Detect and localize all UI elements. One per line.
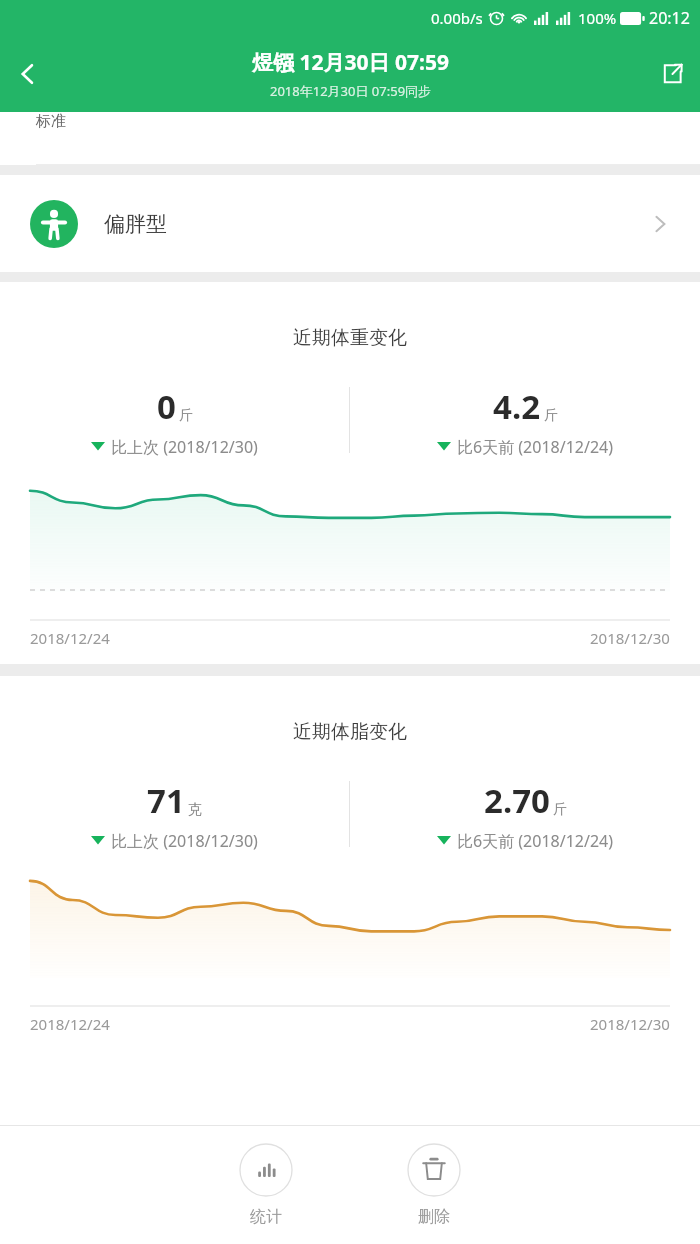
staticText: 2018年12月30日 07:59同步 — [270, 82, 432, 100]
staticText: 比6天前 (2018/12/24) — [457, 436, 614, 456]
staticText: 20:12 — [649, 7, 690, 29]
staticText: 2.70 — [484, 778, 550, 823]
staticText: 标准 — [36, 112, 66, 131]
button[interactable]: Statistics — [227, 1139, 305, 1231]
staticText: 煜镪 12月30日 07:59 — [252, 48, 449, 77]
other: Statistics — [239, 1143, 293, 1197]
staticText: 统计 — [250, 1207, 282, 1227]
staticText: 0.00b/s — [431, 8, 483, 28]
staticText: 斤 — [553, 801, 567, 819]
staticText: 近期体脂变化 — [0, 720, 700, 744]
staticText: 斤 — [179, 407, 193, 425]
staticText: 2018/12/24 — [30, 1014, 110, 1034]
staticText: 100% — [578, 8, 617, 28]
button[interactable]: 偏胖型 — [0, 175, 700, 272]
staticText: 2018/12/24 — [30, 628, 110, 648]
staticText: 删除 — [418, 1207, 450, 1227]
staticText: 比上次 (2018/12/30) — [111, 436, 258, 456]
button[interactable]: Delete — [395, 1139, 473, 1231]
staticText: 0 — [157, 384, 176, 429]
staticText: 2018/12/30 — [590, 628, 670, 648]
other: Delete — [407, 1143, 461, 1197]
staticText: 斤 — [544, 407, 558, 425]
staticText: 71 — [147, 778, 185, 823]
button[interactable]: Share — [644, 46, 700, 102]
staticText: 克 — [188, 801, 202, 819]
button[interactable]: Back — [0, 46, 56, 102]
staticText: 比6天前 (2018/12/24) — [457, 830, 614, 850]
staticText: 4.2 — [493, 384, 541, 429]
staticText: 2018/12/30 — [590, 1014, 670, 1034]
staticText: 近期体重变化 — [0, 326, 700, 350]
staticText: 比上次 (2018/12/30) — [111, 830, 258, 850]
staticText: 偏胖型 — [104, 211, 167, 237]
